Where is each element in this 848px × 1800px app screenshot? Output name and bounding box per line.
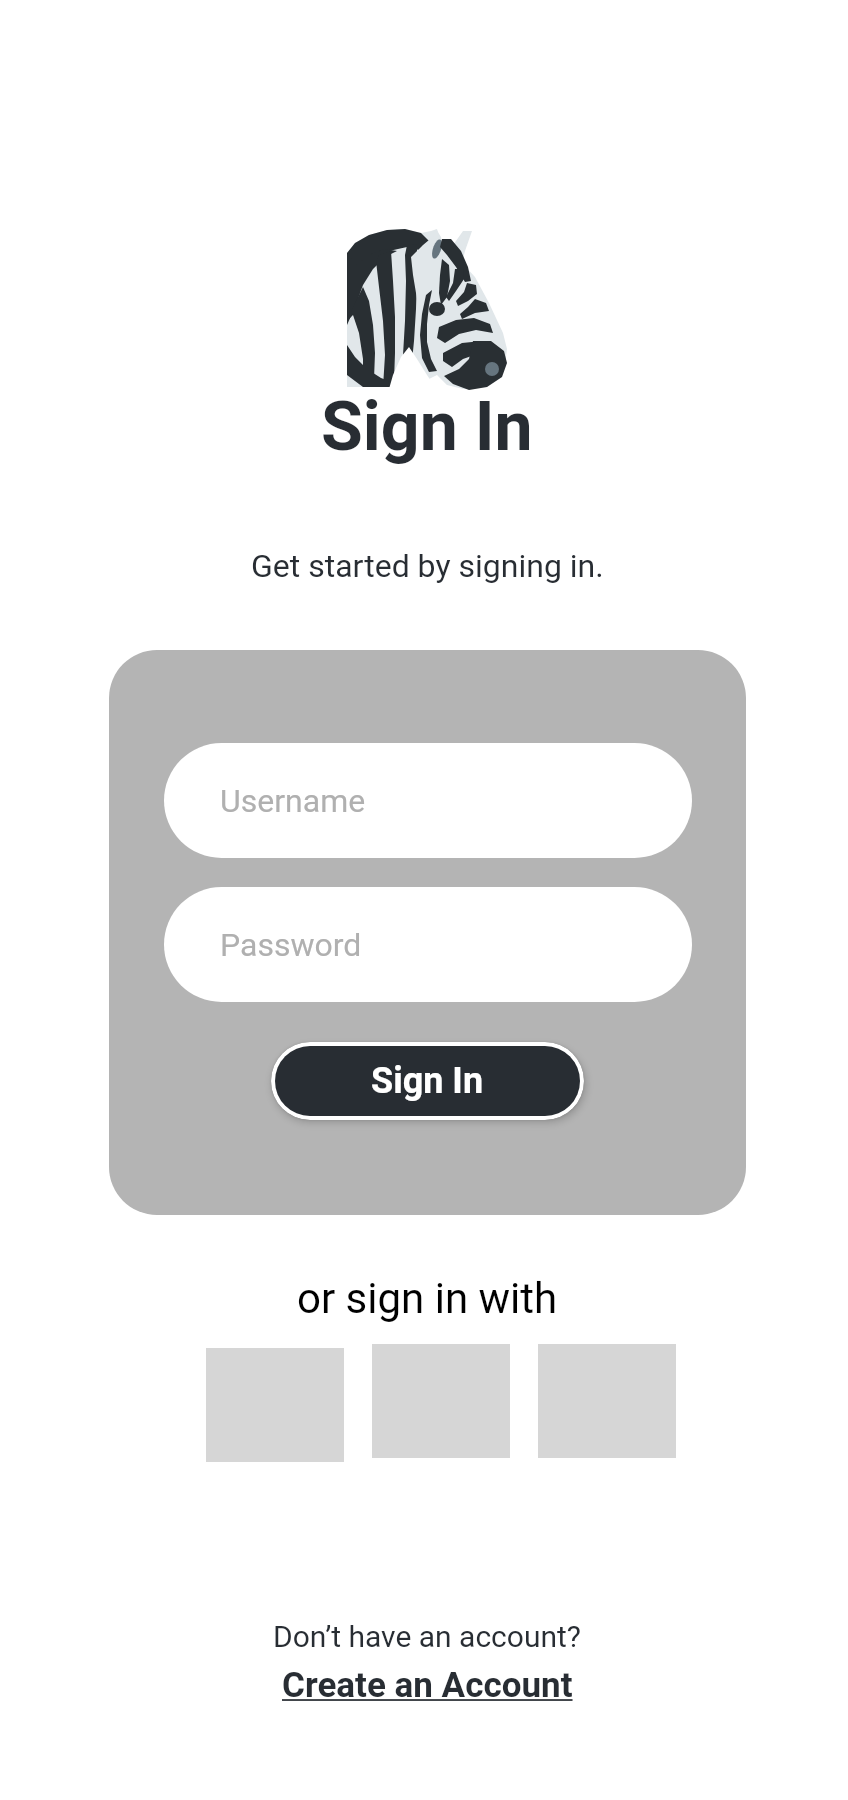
staticText: Password: [220, 926, 362, 964]
button[interactable]: Create an Account: [282, 1665, 573, 1706]
button[interactable]: Password: [164, 887, 692, 1002]
staticText: Get started by signing in.: [251, 547, 604, 585]
button[interactable]: Sign In: [275, 1046, 580, 1116]
staticText: Sign In: [321, 387, 533, 467]
button[interactable]: Username: [164, 743, 692, 858]
staticText: Create an Account: [282, 1665, 573, 1706]
staticText: or sign in with: [297, 1274, 558, 1323]
staticText: Username: [220, 782, 366, 820]
staticText: Don’t have an account?: [273, 1619, 582, 1654]
other: Zebra logo: [345, 229, 509, 389]
staticText: Sign In: [371, 1060, 484, 1102]
